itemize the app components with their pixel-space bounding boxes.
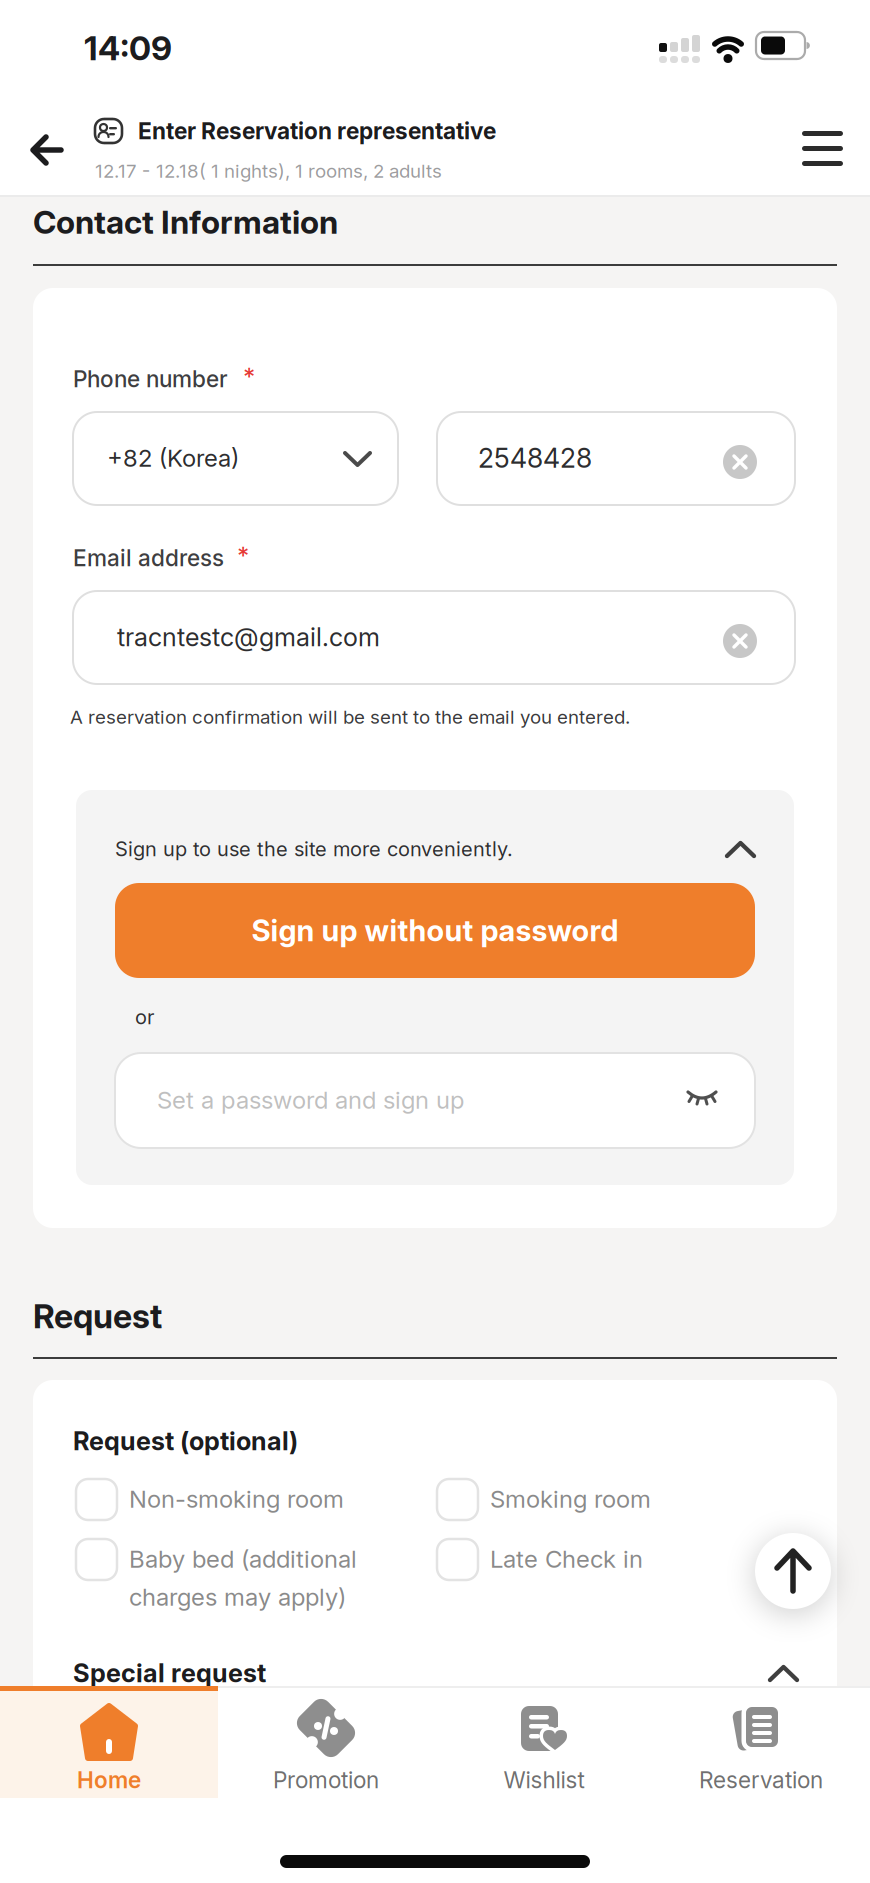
button[interactable]: Home — [0, 1691, 218, 1803]
staticText: Contact Information — [33, 203, 338, 241]
button[interactable]: Show password — [680, 1083, 724, 1115]
staticText: 2548428 — [478, 442, 592, 474]
button[interactable]: Wishlist — [435, 1691, 653, 1803]
button[interactable]: Clear text — [723, 624, 757, 658]
staticText: Enter Reservation representative — [138, 118, 496, 144]
button[interactable]: Collapse special request — [760, 1657, 807, 1690]
staticText: Home — [77, 1767, 141, 1793]
staticText: Sign up to use the site more convenientl… — [115, 837, 513, 861]
button[interactable]: Baby bed (additional — [76, 1539, 406, 1580]
button[interactable]: Set a password and sign up — [115, 1053, 755, 1148]
button[interactable]: Late Check in — [437, 1539, 767, 1580]
button[interactable]: Clear text — [723, 445, 757, 479]
staticText: A reservation confirmation will be sent … — [70, 706, 630, 728]
button[interactable]: Non-smoking room — [76, 1479, 406, 1520]
staticText: 12.17 - 12.18( 1 nights), 1 rooms, 2 adu… — [95, 160, 442, 182]
staticText: Email address — [73, 545, 224, 571]
staticText: Special request — [73, 1658, 266, 1688]
staticText: Request (optional) — [73, 1426, 298, 1456]
staticText: Request — [33, 1296, 162, 1336]
button[interactable]: Menu — [790, 119, 855, 178]
staticText: Wishlist — [503, 1767, 584, 1793]
button[interactable]: Smoking room — [437, 1479, 767, 1520]
staticText: Non-smoking room — [129, 1485, 344, 1513]
staticText: Promotion — [273, 1767, 379, 1793]
button[interactable]: Promotion — [217, 1691, 435, 1803]
staticText: charges may apply) — [129, 1583, 346, 1611]
staticText: Late Check in — [490, 1545, 643, 1573]
staticText: +82 (Korea) — [107, 444, 239, 472]
staticText: or — [135, 1005, 154, 1029]
button[interactable]: Back — [21, 124, 74, 177]
staticText: Reservation — [699, 1767, 823, 1793]
button[interactable]: Phone number — [437, 412, 795, 505]
button[interactable]: Country code +82 Korea — [73, 412, 398, 505]
staticText: * — [237, 541, 249, 569]
button[interactable]: Scroll to top — [755, 1533, 831, 1609]
staticText: * — [243, 362, 255, 390]
staticText: tracntestc@gmail.com — [117, 622, 380, 652]
staticText: Baby bed (additional — [129, 1545, 357, 1573]
button[interactable]: Reservation — [652, 1691, 870, 1803]
button[interactable]: Email address — [73, 591, 795, 684]
staticText: Smoking room — [490, 1485, 651, 1513]
button[interactable]: Sign up without password — [115, 883, 755, 978]
staticText: Set a password and sign up — [157, 1086, 464, 1114]
staticText: Sign up without password — [251, 913, 618, 948]
button[interactable]: Collapse — [717, 833, 764, 866]
staticText: 14:09 — [84, 28, 172, 68]
staticText: Phone number — [73, 366, 228, 392]
